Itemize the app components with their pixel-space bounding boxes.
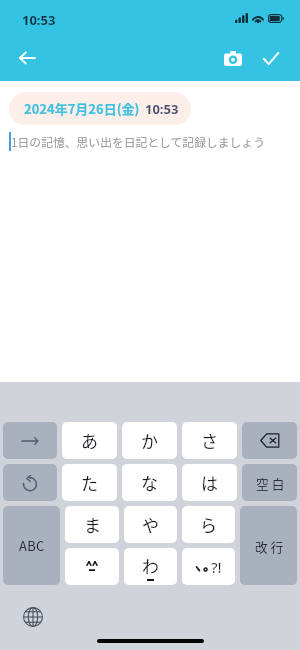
staticText: た [81, 470, 98, 495]
staticText: 1日の記憶、思い出を日記として記録しましょう [11, 133, 265, 150]
staticText: 10:53 [22, 11, 56, 29]
button[interactable]: ABC [3, 506, 60, 585]
button[interactable]: 空白 [242, 464, 297, 501]
staticText: わ [142, 553, 159, 578]
staticText: は [201, 470, 218, 495]
button[interactable]: Next candidate [3, 422, 57, 459]
button[interactable]: か [122, 422, 177, 459]
staticText: 改行 [255, 537, 287, 555]
staticText: 10:53 [145, 100, 179, 118]
staticText: 2024年7月26日(金) [24, 99, 140, 118]
button[interactable]: Camera [215, 40, 251, 76]
staticText: ま [84, 512, 101, 537]
button[interactable]: ら [182, 506, 235, 543]
button[interactable]: わ [124, 548, 177, 585]
staticText: ABC [19, 536, 45, 555]
button[interactable]: や [124, 506, 177, 543]
staticText: 空白 [256, 474, 288, 492]
staticText: ?! [211, 557, 222, 577]
button[interactable]: な [122, 464, 177, 501]
button[interactable]: た [62, 464, 117, 501]
button[interactable] [65, 548, 119, 585]
button[interactable]: Undo [3, 464, 57, 501]
staticText: か [141, 428, 158, 453]
staticText: さ [201, 428, 218, 453]
staticText: や [142, 512, 159, 537]
staticText: な [141, 470, 158, 495]
button[interactable]: ?! [182, 548, 235, 585]
button[interactable]: Save [253, 40, 289, 76]
button[interactable]: さ [182, 422, 237, 459]
staticText: あ [81, 428, 98, 453]
button[interactable]: Back [9, 40, 45, 76]
staticText: ら [200, 512, 217, 537]
button[interactable]: 2024年7月26日(金) [9, 92, 191, 125]
button[interactable]: ま [65, 506, 119, 543]
button[interactable]: 改行 [240, 506, 297, 585]
button[interactable]: Switch keyboard [21, 605, 45, 629]
button[interactable]: Backspace [242, 422, 297, 459]
button[interactable]: あ [62, 422, 117, 459]
button[interactable]: は [182, 464, 237, 501]
